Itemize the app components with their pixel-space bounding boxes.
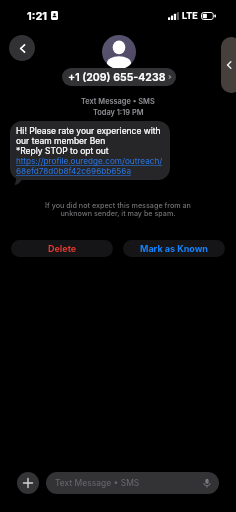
button[interactable]: Back <box>9 35 35 61</box>
staticText: Delete <box>48 243 77 254</box>
staticText: Text Message • SMS <box>55 478 140 488</box>
staticText: Text Message • SMS <box>81 97 155 106</box>
staticText: https://profile.ouredge.com/outreach/ 68… <box>16 156 163 176</box>
button[interactable]: Hi! Please rate your experience with our… <box>10 121 170 180</box>
button[interactable]: Add attachment <box>17 472 39 494</box>
staticText: Hi! Please rate your experience with our… <box>16 126 161 156</box>
staticText: Mark as Known <box>140 243 208 254</box>
staticText: +1 (209) 655-4238 <box>68 71 166 84</box>
staticText: 1:21 <box>27 9 48 22</box>
staticText: LTE <box>182 10 198 21</box>
button[interactable]: +1 (209) 655-4238 <box>62 68 176 86</box>
button[interactable]: Contact photo <box>102 35 136 69</box>
staticText: Today 1:19 PM <box>93 108 144 117</box>
button[interactable]: Text Message • SMS <box>46 472 219 494</box>
staticText: If you did not expect this message from … <box>20 201 216 218</box>
button[interactable]: Delete <box>11 240 113 257</box>
button[interactable]: Previous conversation <box>221 37 236 93</box>
button[interactable]: Mark as Known <box>123 240 225 257</box>
